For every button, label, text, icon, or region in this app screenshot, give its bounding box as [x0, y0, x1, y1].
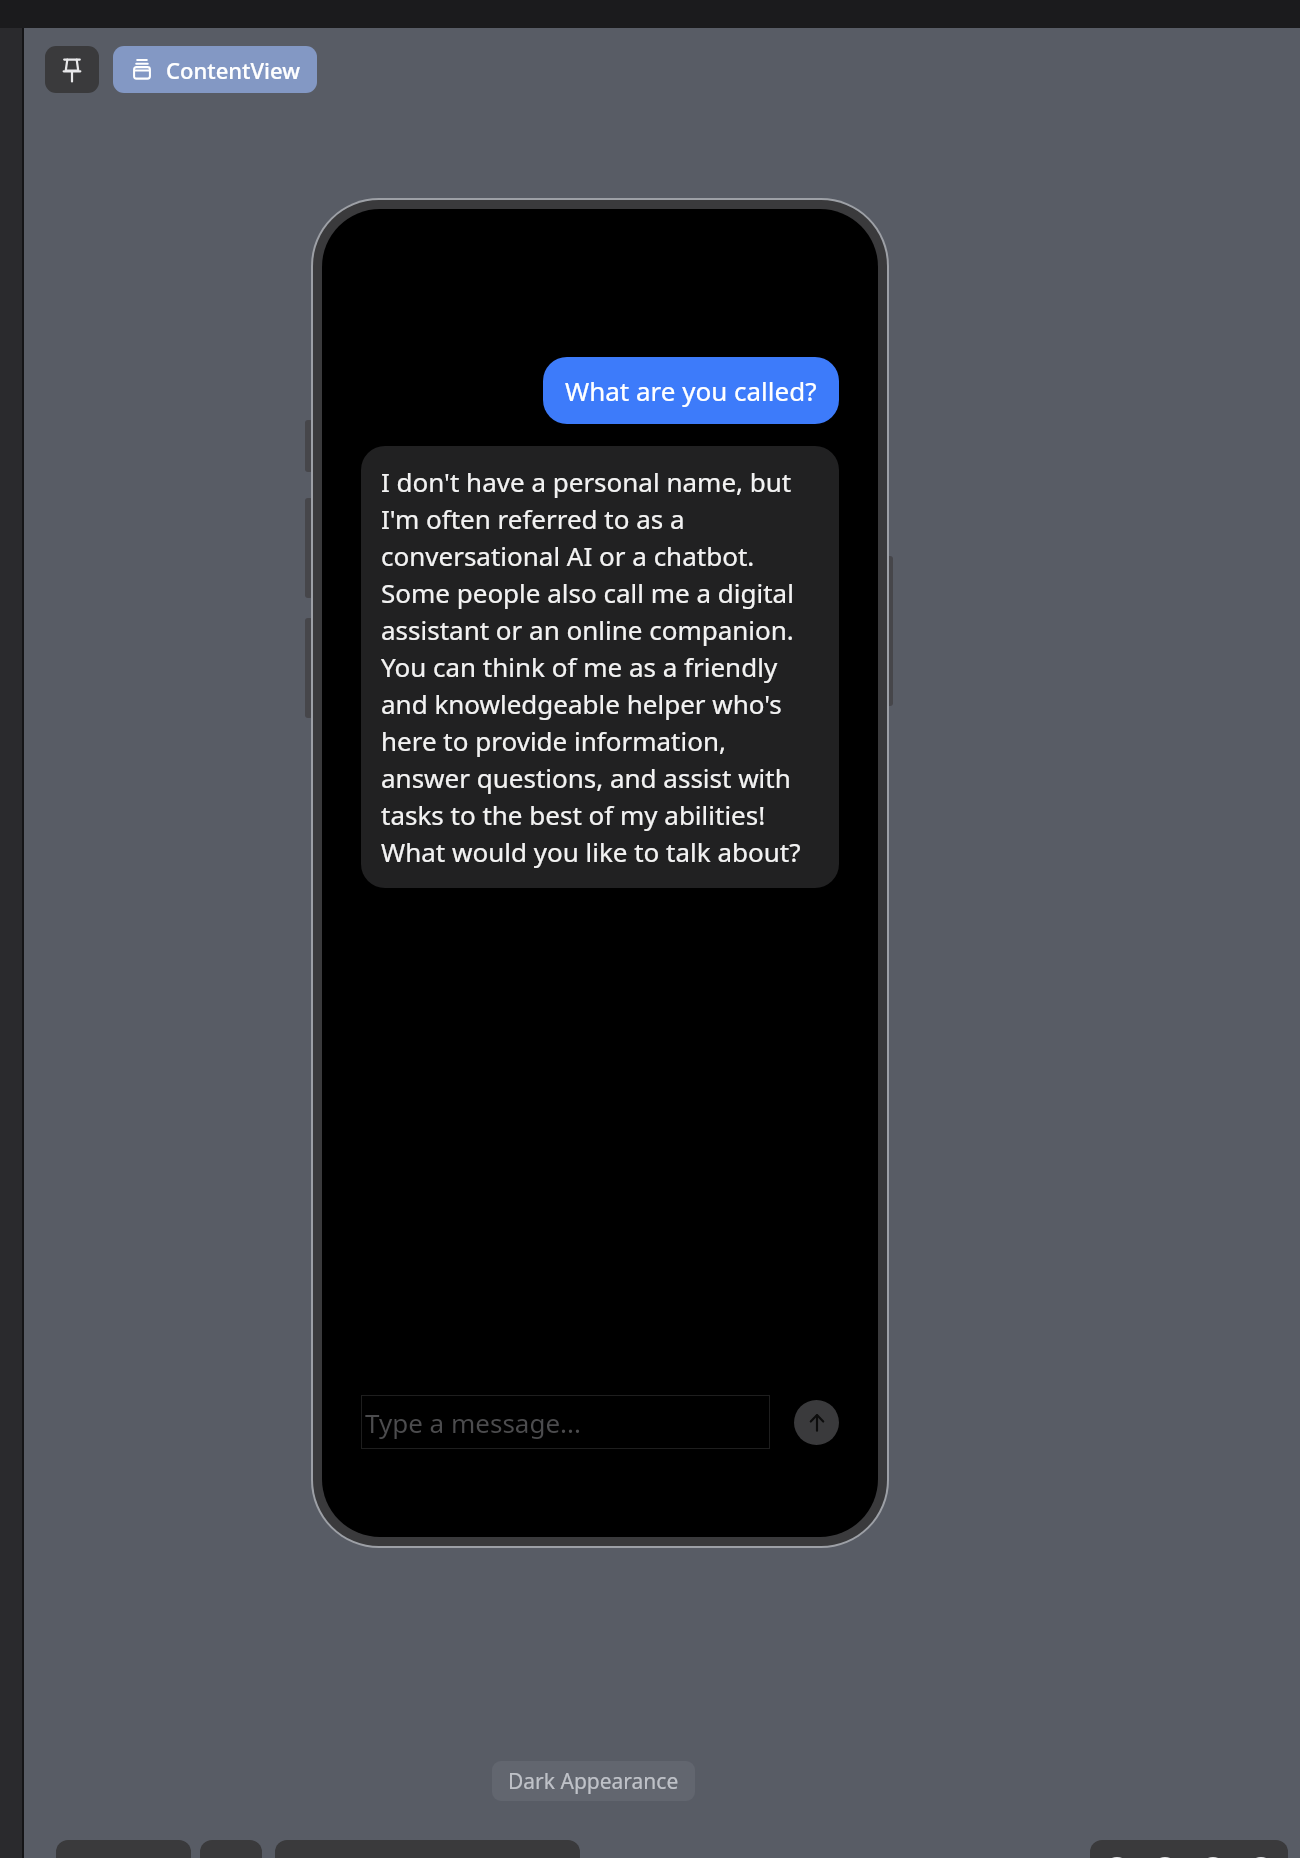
button[interactable]: Device settings: [200, 1840, 262, 1858]
button[interactable]: [1090, 1840, 1288, 1858]
staticText: I don't have a personal name, but I'm of…: [381, 464, 819, 870]
button[interactable]: Automatic (iPhone 16 P…: [275, 1840, 580, 1858]
staticText: Dark Appearance: [508, 1767, 679, 1796]
button[interactable]: Type a message...: [361, 1395, 770, 1449]
staticText: ContentView: [166, 55, 300, 85]
button[interactable]: What are you called?: [543, 357, 839, 424]
button[interactable]: Send message: [794, 1400, 839, 1445]
staticText: Type a message...: [365, 1405, 581, 1440]
button[interactable]: [56, 1840, 191, 1858]
button[interactable]: Dark Appearance: [492, 1761, 695, 1801]
staticText: What are you called?: [565, 373, 817, 408]
button[interactable]: I don't have a personal name, but I'm of…: [361, 446, 839, 888]
button[interactable]: Pin preview: [45, 46, 99, 93]
button[interactable]: ContentView: [113, 46, 317, 93]
